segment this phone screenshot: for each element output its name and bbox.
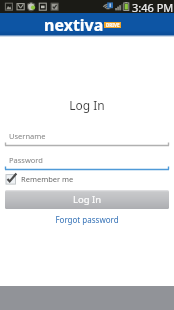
staticText: Log In — [73, 193, 102, 206]
button[interactable]: Remember me — [5, 173, 174, 186]
staticText: nextiva — [44, 14, 104, 36]
button[interactable]: Password — [0, 155, 174, 173]
staticText: Log In — [0, 97, 174, 113]
staticText: DRIVE — [106, 22, 120, 28]
button[interactable]: Log In — [5, 190, 169, 209]
staticText: Remember me — [21, 174, 74, 184]
staticText: 3:46 PM — [132, 0, 174, 13]
staticText: Username — [9, 131, 46, 141]
staticText: Password — [9, 155, 43, 165]
button[interactable]: Forgot password — [0, 214, 174, 225]
button[interactable]: Username — [0, 131, 174, 149]
